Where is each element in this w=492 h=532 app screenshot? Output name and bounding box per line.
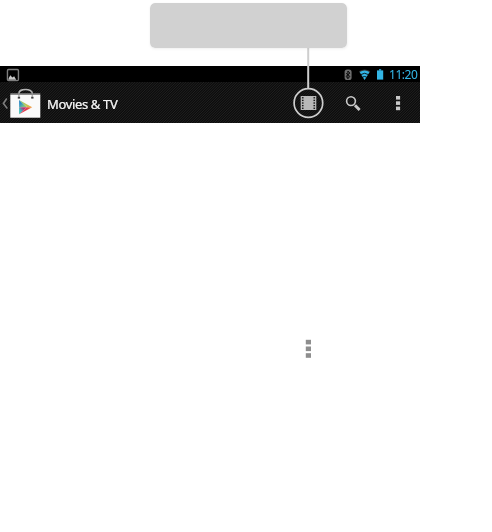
button[interactable]: More options xyxy=(379,82,418,123)
staticText: 11:20 xyxy=(389,66,418,82)
button[interactable]: My movies xyxy=(289,82,329,123)
button[interactable]: Navigate up xyxy=(0,82,125,123)
staticText: Movies & TV xyxy=(47,95,118,113)
button[interactable]: Search xyxy=(331,82,370,123)
button[interactable]: Overflow menu xyxy=(297,333,320,364)
